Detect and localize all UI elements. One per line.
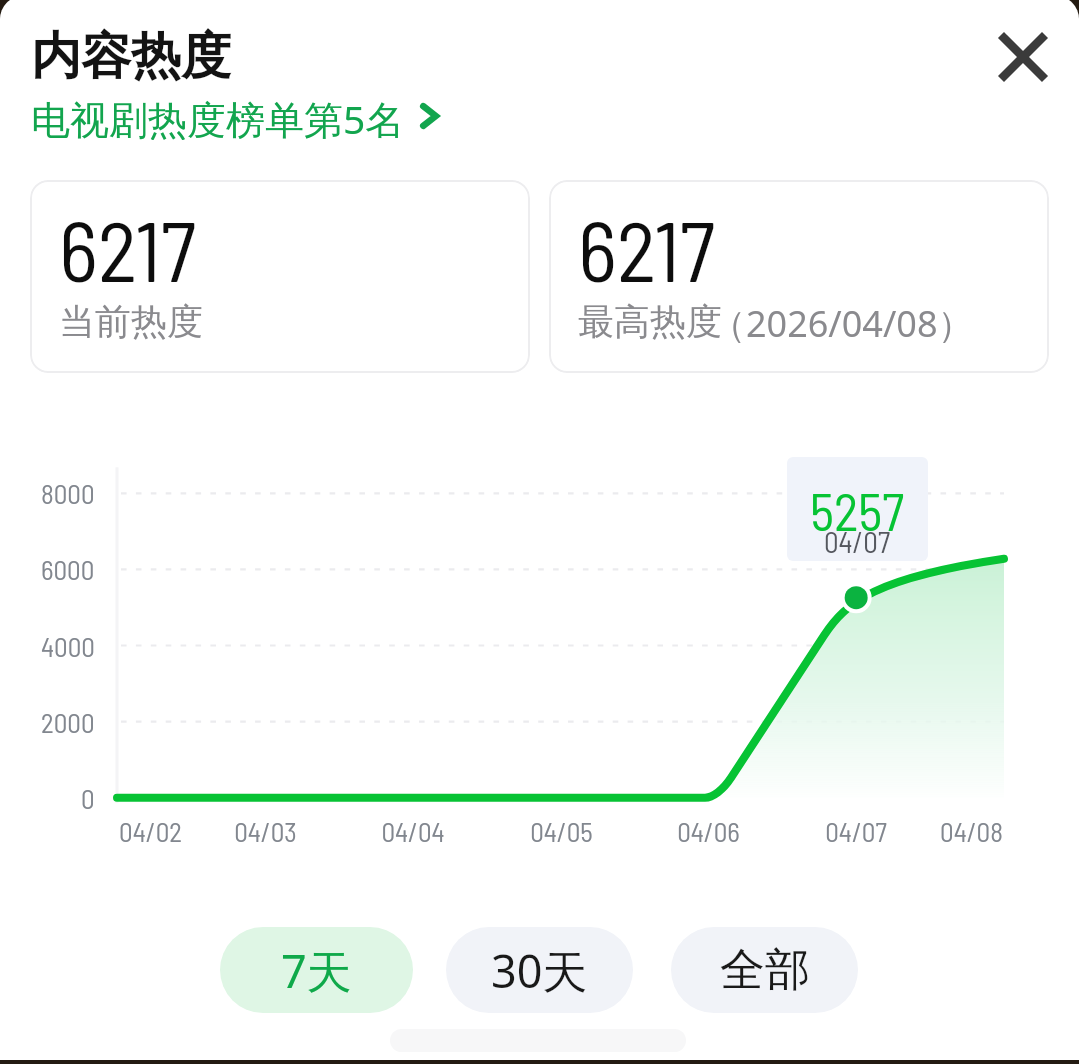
staticText: 04/04: [381, 815, 445, 847]
staticText: 0: [81, 782, 95, 814]
staticText: 电视剧热度榜单第5名: [31, 92, 405, 140]
button[interactable]: Close: [983, 17, 1063, 97]
staticText: 5257: [810, 479, 905, 541]
staticText: 04/06: [677, 815, 740, 847]
staticText: 04/03: [234, 815, 297, 847]
button[interactable]: 6217: [549, 180, 1049, 373]
staticText: 04/07: [824, 524, 891, 559]
button[interactable]: 6217: [30, 180, 530, 373]
staticText: 4000: [41, 630, 95, 662]
staticText: 6217: [59, 198, 196, 299]
staticText: 6217: [578, 198, 715, 299]
staticText: 内容热度: [31, 25, 231, 88]
staticText: 最高热度: [578, 299, 722, 343]
staticText: 全部: [720, 942, 810, 999]
staticText: 04/08: [940, 815, 1003, 847]
staticText: 8000: [41, 477, 95, 509]
staticText: 7天: [281, 940, 352, 1001]
staticText: 2000: [41, 706, 95, 738]
staticText: 04/05: [530, 815, 593, 847]
button[interactable]: 全部: [671, 927, 858, 1013]
button[interactable]: 7天: [220, 927, 413, 1013]
staticText: 04/07: [825, 815, 887, 847]
staticText: 04/02: [119, 815, 182, 847]
button[interactable]: 电视剧热度榜单第5名: [31, 92, 446, 140]
staticText: 当前热度: [59, 299, 203, 343]
staticText: 6000: [41, 553, 95, 585]
button[interactable]: 30天: [446, 927, 633, 1013]
staticText: （2026/04/08）: [710, 299, 974, 343]
staticText: 30天: [491, 940, 588, 1001]
